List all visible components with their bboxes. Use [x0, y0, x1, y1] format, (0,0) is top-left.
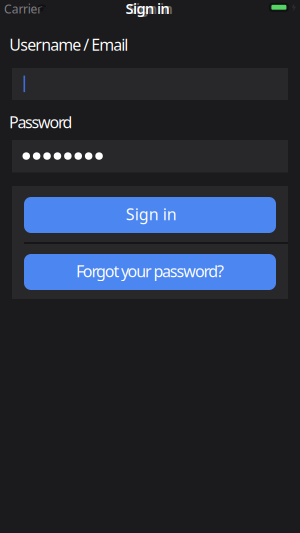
button[interactable]	[12, 68, 288, 100]
button[interactable]: Forgot your password?	[24, 254, 276, 290]
button[interactable]: Sign in	[24, 197, 276, 233]
staticText: Sign in	[125, 0, 169, 18]
staticText: Forgot your password?	[76, 260, 224, 282]
staticText: Username / Email	[9, 34, 128, 55]
staticText: Carrier	[4, 1, 42, 17]
staticText: Sign in	[126, 203, 177, 225]
staticText: Sign in	[128, 0, 172, 18]
button[interactable]	[12, 140, 288, 172]
staticText: Password	[9, 111, 72, 132]
